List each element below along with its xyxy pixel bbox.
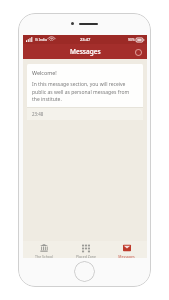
button[interactable]: Messages	[106, 241, 147, 258]
staticText: Welcome!	[32, 69, 57, 76]
staticText: 23:47	[80, 37, 91, 42]
staticText: 23:48	[32, 111, 44, 117]
staticText: Placed Zone	[76, 254, 96, 258]
staticText: In this message section, you will receiv…	[32, 81, 138, 102]
staticText: Vi India	[35, 37, 47, 42]
staticText: 90%	[128, 37, 135, 42]
button[interactable]: Placed Zone	[65, 241, 106, 258]
button[interactable]: The School	[23, 241, 65, 258]
button[interactable]: Refresh	[132, 46, 144, 58]
staticText: Messages	[118, 254, 135, 258]
button[interactable]: Welcome!	[27, 64, 143, 120]
staticText: The School	[35, 254, 53, 258]
staticText: Messages	[70, 47, 101, 56]
